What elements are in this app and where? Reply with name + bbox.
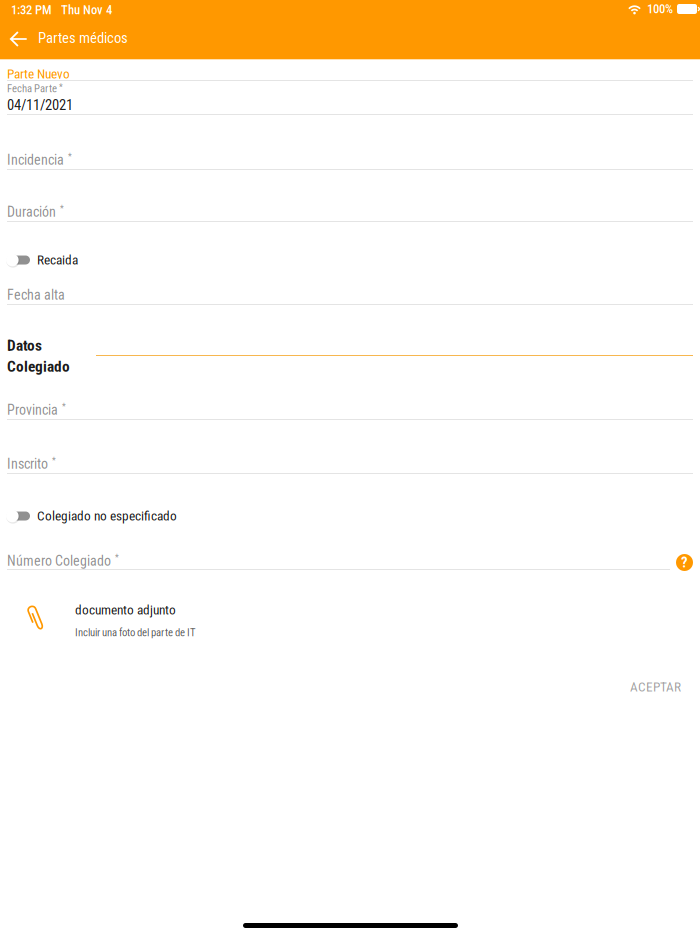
staticText: Duración xyxy=(7,204,56,220)
button[interactable]: Ayuda xyxy=(676,554,693,571)
staticText: Provincia xyxy=(7,402,58,418)
button[interactable]: Fecha Parte xyxy=(0,0,700,934)
staticText: Colegiado xyxy=(7,357,70,375)
staticText: Recaida xyxy=(37,252,78,268)
button[interactable]: Número Colegiado xyxy=(0,0,700,934)
staticText: Colegiado no especificado xyxy=(37,508,177,524)
staticText: Parte Nuevo xyxy=(7,66,70,82)
button[interactable]: Incidencia xyxy=(0,0,700,934)
staticText: * xyxy=(59,82,63,92)
staticText: Partes médicos xyxy=(38,29,128,47)
staticText: ACEPTAR xyxy=(630,679,681,695)
staticText: Inscrito xyxy=(7,456,48,472)
staticText: 1:32 PM xyxy=(11,3,52,17)
staticText: * xyxy=(62,402,66,412)
staticText: Thu Nov 4 xyxy=(61,3,112,17)
staticText: * xyxy=(52,456,56,466)
button[interactable]: Fecha alta xyxy=(0,0,700,934)
staticText: documento adjunto xyxy=(75,602,176,618)
button[interactable]: documento adjunto xyxy=(0,0,700,934)
staticText: Fecha Parte xyxy=(7,82,57,95)
staticText: 04/11/2021 xyxy=(7,96,73,114)
staticText: 100% xyxy=(647,2,673,16)
staticText: Datos xyxy=(7,336,42,354)
staticText: Incluir una foto del parte de IT xyxy=(75,626,196,639)
staticText: * xyxy=(115,553,119,563)
staticText: Fecha alta xyxy=(7,287,65,303)
button[interactable]: Recaida xyxy=(0,0,700,934)
staticText: * xyxy=(60,204,64,214)
button[interactable]: ACEPTAR xyxy=(618,673,693,701)
staticText: * xyxy=(68,152,72,162)
staticText: ? xyxy=(681,554,688,571)
staticText: Número Colegiado xyxy=(7,553,111,569)
staticText: Incidencia xyxy=(7,152,64,168)
button[interactable]: Provincia xyxy=(0,0,700,934)
button[interactable]: Inscrito xyxy=(0,0,700,934)
button[interactable]: Atrás xyxy=(2,22,36,56)
button[interactable]: Duración xyxy=(0,0,700,934)
button[interactable]: Colegiado no especificado xyxy=(0,0,700,934)
